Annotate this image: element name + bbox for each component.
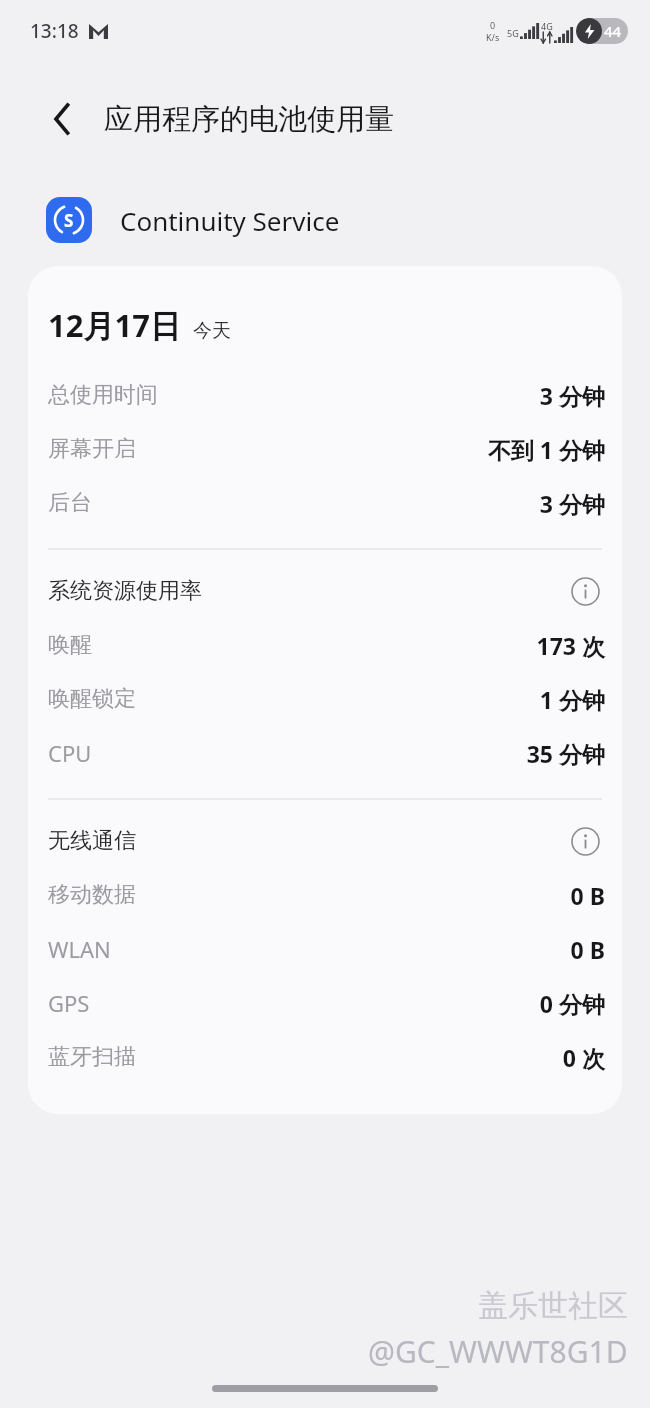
- staticText: 0 B: [570, 934, 605, 965]
- staticText: 13:18: [30, 18, 79, 44]
- staticText: 0 分钟: [539, 988, 605, 1019]
- button[interactable]: 屏幕开启: [28, 422, 622, 476]
- staticText: 173 次: [536, 630, 605, 661]
- staticText: 应用程序的电池使用量: [104, 101, 394, 138]
- staticText: 盖乐世社区: [478, 1287, 628, 1325]
- staticText: GPS: [48, 988, 90, 1018]
- staticText: 总使用时间: [48, 381, 158, 409]
- staticText: 不到 1 分钟: [487, 434, 605, 465]
- button[interactable]: 总使用时间: [28, 368, 622, 422]
- button[interactable]: 唤醒锁定: [28, 672, 622, 726]
- staticText: 今天: [193, 319, 231, 343]
- button[interactable]: Back: [34, 91, 90, 147]
- staticText: 系统资源使用率: [48, 577, 202, 605]
- staticText: 无线通信: [48, 827, 136, 855]
- staticText: 唤醒: [48, 631, 92, 659]
- button[interactable]: 系统资源使用率: [28, 564, 622, 618]
- staticText: WLAN: [48, 934, 111, 964]
- staticText: 4G: [541, 20, 553, 32]
- staticText: 0: [490, 19, 496, 31]
- button[interactable]: 后台: [28, 476, 622, 530]
- staticText: 蓝牙扫描: [48, 1043, 136, 1071]
- button[interactable]: S: [0, 190, 650, 250]
- staticText: CPU: [48, 738, 92, 768]
- staticText: 后台: [48, 489, 92, 517]
- staticText: 0 B: [570, 880, 605, 911]
- button[interactable]: 唤醒: [28, 618, 622, 672]
- staticText: 3 分钟: [539, 488, 605, 519]
- staticText: @GC_WWWT8G1D: [368, 1331, 628, 1372]
- staticText: 唤醒锁定: [48, 685, 136, 713]
- staticText: 12月17日: [48, 304, 181, 346]
- staticText: S: [64, 209, 74, 232]
- staticText: 屏幕开启: [48, 435, 136, 463]
- button[interactable]: 移动数据: [28, 868, 622, 922]
- staticText: 1 分钟: [539, 684, 605, 715]
- button[interactable]: Info: [565, 821, 605, 861]
- button[interactable]: WLAN: [28, 922, 622, 976]
- staticText: Continuity Service: [120, 203, 340, 238]
- button[interactable]: CPU: [28, 726, 622, 780]
- button[interactable]: 蓝牙扫描: [28, 1030, 622, 1084]
- staticText: 44: [604, 21, 622, 41]
- button[interactable]: GPS: [28, 976, 622, 1030]
- staticText: 移动数据: [48, 881, 136, 909]
- staticText: K/s: [486, 31, 500, 43]
- button[interactable]: 无线通信: [28, 814, 622, 868]
- button[interactable]: Info: [565, 571, 605, 611]
- staticText: 0 次: [562, 1042, 605, 1073]
- staticText: 3 分钟: [539, 380, 605, 411]
- staticText: 35 分钟: [526, 738, 605, 769]
- staticText: 5G: [507, 27, 519, 39]
